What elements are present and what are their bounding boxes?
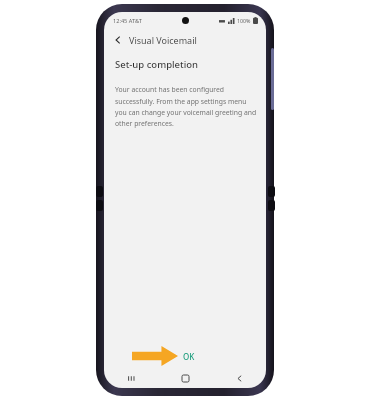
staticText: OK [183,351,195,362]
button[interactable]: Back [212,368,266,388]
button[interactable]: Recents [104,368,158,388]
staticText: 100% [237,17,251,24]
staticText: Your account has been configured success… [115,85,257,128]
staticText: 12:45 AT&T [113,17,142,25]
button[interactable]: Back [110,32,126,48]
staticText: Visual Voicemail [129,34,197,46]
button[interactable]: Home [158,368,212,388]
button[interactable]: OK [180,348,198,365]
staticText: Set-up completion [115,58,199,71]
